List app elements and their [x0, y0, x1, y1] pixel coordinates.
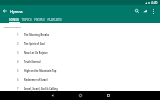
staticText: PEOPLE [34, 18, 45, 22]
staticText: Israel, Israel, God Is Calling [24, 87, 58, 90]
staticText: TOPICS [21, 18, 32, 22]
button[interactable]: TOPICS [20, 17, 33, 23]
button[interactable]: Recent apps [102, 91, 114, 100]
button[interactable]: 2 [0, 39, 160, 48]
button[interactable]: Navigate up [0, 5, 10, 17]
button[interactable]: Search [133, 5, 141, 17]
button[interactable]: 4 [0, 57, 160, 66]
staticText: 6 [17, 78, 19, 82]
staticText: 4:20 [151, 1, 158, 5]
button[interactable]: SONGS [8, 17, 20, 23]
button[interactable]: Back [46, 91, 58, 100]
button[interactable]: Home [74, 91, 86, 100]
staticText: 2 [17, 42, 19, 46]
staticText: 4 [17, 60, 19, 64]
button[interactable]: PEOPLE [33, 17, 46, 23]
staticText: RESTORATION [4, 25, 21, 28]
staticText: 5 [17, 69, 19, 73]
button[interactable]: More options [149, 5, 157, 17]
staticText: 1 [17, 33, 19, 37]
staticText: The Spirit of God [24, 42, 45, 45]
staticText: SONGS [9, 18, 19, 22]
staticText: High on the Mountain Top [24, 69, 57, 72]
staticText: 3 [17, 51, 19, 55]
button[interactable]: 5 [0, 66, 160, 75]
button[interactable]: 7 [0, 84, 160, 93]
button[interactable]: PLAYLISTS [46, 17, 63, 23]
staticText: 7 [17, 87, 19, 91]
staticText: The Morning Breaks [24, 33, 50, 36]
staticText: Now Let Us Rejoice [24, 51, 48, 54]
button[interactable]: 3 [0, 48, 160, 57]
staticText: PLAYLISTS [47, 18, 62, 22]
staticText: Truth Eternal [24, 60, 41, 63]
button[interactable]: 6 [0, 75, 160, 84]
button[interactable]: Cast [141, 5, 149, 17]
button[interactable]: 1 [0, 30, 160, 39]
staticText: Hymns [10, 9, 23, 14]
staticText: Redeemer of Israel [24, 78, 48, 81]
